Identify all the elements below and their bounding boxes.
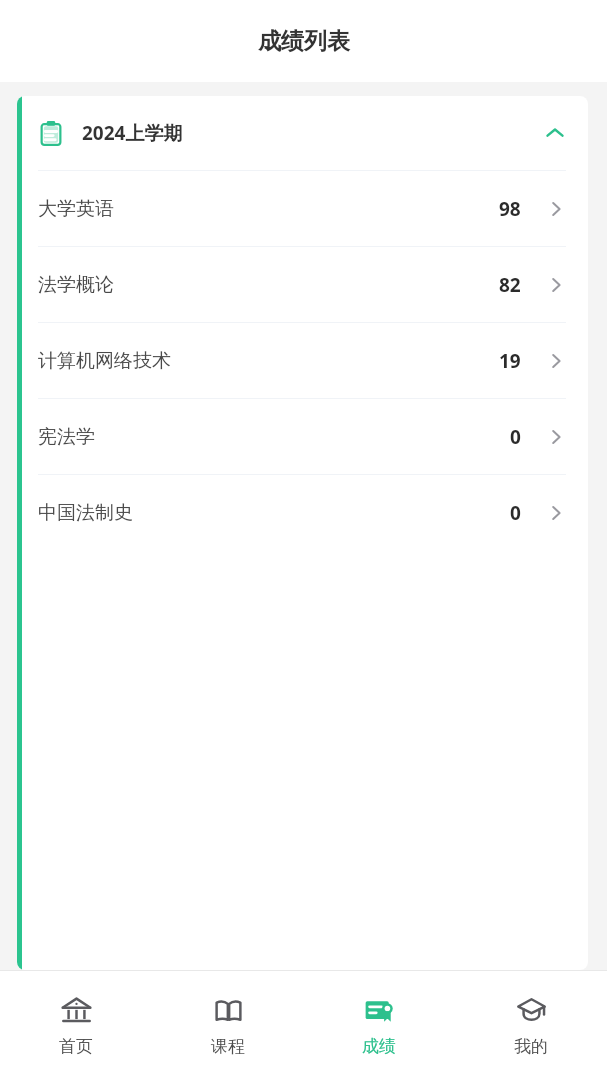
button[interactable]: 成绩 <box>304 971 454 1080</box>
button[interactable]: 法学概论 <box>17 247 588 322</box>
button[interactable]: 宪法学 <box>17 399 588 474</box>
button[interactable]: 计算机网络技术 <box>17 323 588 398</box>
button[interactable]: 我的 <box>456 971 606 1080</box>
staticText: 0 <box>510 424 521 450</box>
button[interactable]: 大学英语 <box>17 171 588 246</box>
staticText: 计算机网络技术 <box>38 349 171 373</box>
button[interactable]: 课程 <box>153 971 303 1080</box>
staticText: 中国法制史 <box>38 501 133 525</box>
staticText: 首页 <box>59 1036 93 1057</box>
staticText: 0 <box>510 500 521 526</box>
button[interactable]: 首页 <box>1 971 151 1080</box>
staticText: 我的 <box>514 1036 548 1057</box>
staticText: 法学概论 <box>38 273 114 297</box>
button[interactable]: 中国法制史 <box>17 475 588 550</box>
staticText: 大学英语 <box>38 197 114 221</box>
staticText: 宪法学 <box>38 425 95 449</box>
button[interactable]: 2024上学期 <box>17 96 588 170</box>
staticText: 成绩列表 <box>258 27 350 56</box>
staticText: 成绩 <box>362 1036 396 1057</box>
staticText: 课程 <box>211 1036 245 1057</box>
staticText: 98 <box>499 196 521 222</box>
staticText: 82 <box>499 272 521 298</box>
staticText: 2024上学期 <box>82 120 183 146</box>
staticText: 19 <box>499 348 521 374</box>
